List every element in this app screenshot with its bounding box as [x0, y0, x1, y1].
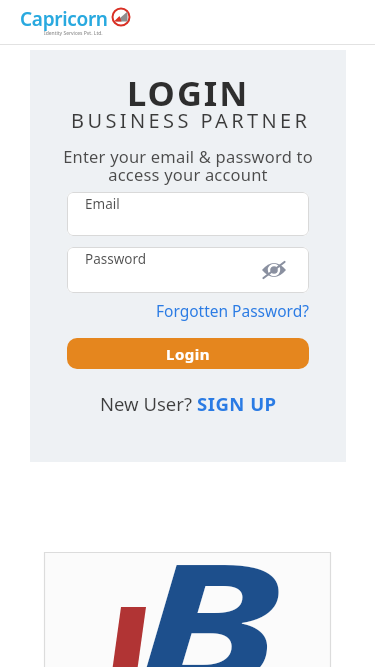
staticText: Email [85, 195, 120, 213]
staticText: Enter your email & password to access yo… [48, 145, 328, 186]
button[interactable]: Password [67, 247, 309, 293]
staticText: New User? [100, 391, 197, 416]
staticText: Capricorn [20, 6, 108, 32]
staticText: Login [166, 344, 210, 364]
staticText: Identity Services Pvt. Ltd. [44, 30, 103, 37]
button[interactable]: Email [67, 192, 309, 236]
staticText: B [135, 505, 375, 667]
staticText: Password [85, 250, 147, 268]
staticText: BUSINESS PARTNER [71, 107, 311, 122]
button[interactable]: Login [67, 338, 309, 369]
staticText: LOGIN [127, 69, 250, 95]
button[interactable]: SIGN UP [197, 391, 277, 416]
button[interactable]: Forgotten Password? [156, 300, 309, 321]
